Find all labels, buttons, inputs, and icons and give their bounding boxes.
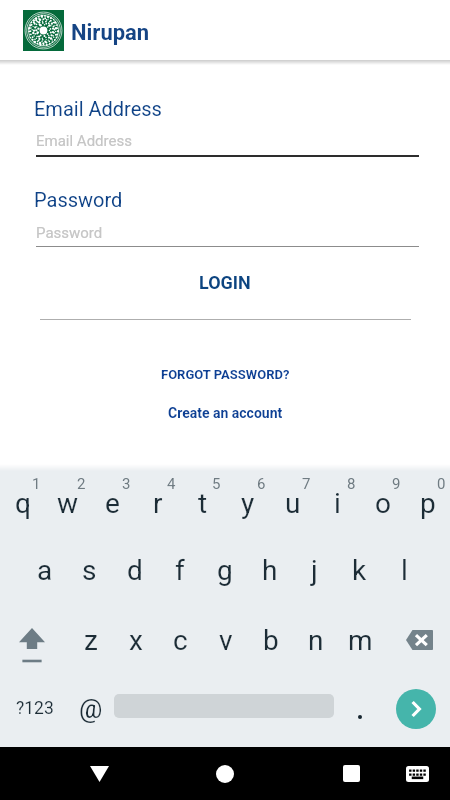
button[interactable]: z: [68, 606, 113, 674]
staticText: j: [311, 554, 318, 587]
button[interactable]: LOGIN: [0, 268, 450, 296]
button[interactable]: Home: [204, 747, 246, 800]
button[interactable]: d: [112, 536, 157, 604]
staticText: g: [217, 554, 233, 587]
button[interactable]: s: [67, 536, 112, 604]
staticText: Email Address: [34, 97, 162, 120]
button[interactable]: h: [247, 536, 292, 604]
button[interactable]: ?123: [0, 674, 67, 742]
staticText: ?123: [16, 698, 54, 719]
button[interactable]: Back: [78, 747, 120, 800]
staticText: 7: [302, 475, 311, 493]
staticText: u: [285, 487, 301, 520]
staticText: k: [352, 554, 367, 587]
staticText: i: [334, 487, 341, 520]
button[interactable]: FORGOT PASSWORD?: [0, 363, 450, 385]
button[interactable]: Recents: [330, 747, 372, 800]
staticText: c: [173, 624, 188, 657]
staticText: e: [105, 487, 120, 520]
staticText: s: [82, 554, 97, 587]
button[interactable]: w: [45, 469, 90, 537]
staticText: 4: [167, 475, 176, 493]
staticText: f: [175, 554, 185, 587]
staticText: Password: [36, 224, 103, 242]
button[interactable]: @: [67, 674, 114, 742]
staticText: m: [348, 624, 373, 657]
button[interactable]: Create an account: [0, 402, 450, 424]
staticText: y: [241, 487, 255, 520]
button[interactable]: p: [405, 469, 450, 537]
button[interactable]: y: [225, 469, 270, 537]
button[interactable]: b: [248, 606, 293, 674]
button[interactable]: u: [270, 469, 315, 537]
staticText: q: [15, 487, 31, 520]
button[interactable]: x: [113, 606, 158, 674]
staticText: p: [420, 487, 436, 520]
button[interactable]: q: [0, 469, 45, 537]
button[interactable]: Space: [114, 674, 334, 742]
button[interactable]: l: [382, 536, 427, 604]
staticText: x: [129, 624, 143, 657]
staticText: o: [375, 487, 391, 520]
button[interactable]: Backspace: [385, 606, 450, 674]
staticText: r: [153, 487, 163, 520]
staticText: 3: [122, 475, 131, 493]
staticText: Create an account: [168, 405, 283, 421]
button[interactable]: Switch keyboard: [396, 747, 438, 800]
staticText: 9: [392, 475, 401, 493]
button[interactable]: Password: [36, 220, 419, 247]
button[interactable]: g: [202, 536, 247, 604]
button[interactable]: t: [180, 469, 225, 537]
button[interactable]: e: [90, 469, 135, 537]
staticText: d: [127, 554, 143, 587]
staticText: h: [262, 554, 278, 587]
staticText: w: [57, 487, 79, 520]
button[interactable]: Period: [334, 674, 382, 742]
button[interactable]: Enter: [396, 689, 436, 729]
button[interactable]: f: [157, 536, 202, 604]
button[interactable]: v: [203, 606, 248, 674]
button[interactable]: Email Address: [36, 128, 419, 157]
button[interactable]: i: [315, 469, 360, 537]
staticText: @: [79, 694, 103, 724]
staticText: FORGOT PASSWORD?: [161, 367, 290, 382]
button[interactable]: a: [22, 536, 67, 604]
staticText: 6: [257, 475, 266, 493]
staticText: t: [198, 487, 208, 520]
button[interactable]: o: [360, 469, 405, 537]
staticText: 8: [347, 475, 356, 493]
staticText: 0: [437, 475, 446, 493]
staticText: Password: [34, 188, 123, 211]
staticText: 1: [32, 475, 41, 493]
button[interactable]: m: [338, 606, 383, 674]
staticText: Nirupan: [71, 20, 150, 46]
staticText: z: [84, 624, 98, 657]
staticText: b: [263, 624, 279, 657]
staticText: a: [37, 554, 53, 587]
staticText: n: [308, 624, 324, 657]
staticText: 2: [77, 475, 86, 493]
staticText: v: [219, 624, 233, 657]
button[interactable]: r: [135, 469, 180, 537]
staticText: LOGIN: [199, 272, 251, 293]
button[interactable]: k: [337, 536, 382, 604]
button[interactable]: n: [293, 606, 338, 674]
staticText: l: [401, 554, 408, 587]
button[interactable]: c: [158, 606, 203, 674]
button[interactable]: j: [292, 536, 337, 604]
staticText: Email Address: [36, 132, 132, 150]
staticText: 5: [212, 475, 221, 493]
button[interactable]: Shift: [0, 606, 45, 674]
